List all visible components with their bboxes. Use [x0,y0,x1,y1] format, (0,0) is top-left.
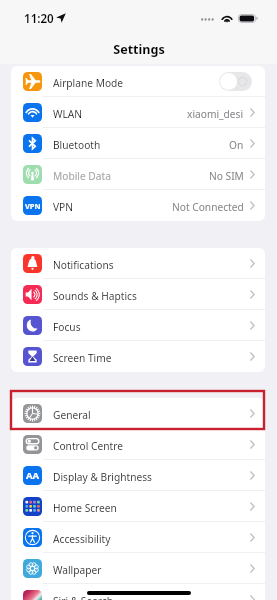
staticText: Sounds & Haptics [53,289,137,303]
staticText: Bluetooth [53,138,101,152]
button[interactable]: Notifications [11,248,265,278]
staticText: AA [26,469,40,482]
button[interactable]: VPN [11,190,265,220]
staticText: xiaomi_desi [187,107,244,121]
staticText: Focus [53,320,81,334]
button[interactable]: AA [11,460,265,490]
button[interactable]: Accessibility [11,522,265,552]
staticText: Screen Time [53,351,112,365]
staticText: Mobile Data [53,169,111,183]
button[interactable]: WLAN [11,97,265,127]
staticText: Siri & Search [53,594,114,600]
button[interactable]: Airplane Mode switch [219,72,252,91]
button[interactable]: Home Screen [11,491,265,521]
staticText: Control Centre [53,439,123,453]
staticText: WLAN [53,107,83,121]
button[interactable]: General [11,398,265,428]
staticText: No SIM [209,169,244,183]
button[interactable]: Bluetooth [11,128,265,158]
button[interactable]: Focus [11,310,265,340]
button[interactable]: Screen Time [11,341,265,371]
staticText: General [53,408,91,422]
button[interactable]: Siri & Search [11,584,265,600]
button[interactable]: Airplane Mode [11,66,265,96]
button[interactable]: Wallpaper [11,553,265,583]
button[interactable]: Control Centre [11,429,265,459]
staticText: Accessibility [53,532,111,546]
staticText: VPN [53,200,74,214]
staticText: Home Screen [53,501,117,515]
staticText: VPN [25,201,41,211]
button[interactable]: Sounds & Haptics [11,279,265,309]
staticText: Not Connected [172,200,244,214]
staticText: On [229,138,244,152]
staticText: Settings [113,41,165,58]
button[interactable]: Mobile Data [11,159,265,189]
staticText: 11:20 [24,11,54,27]
staticText: Wallpaper [53,563,102,577]
staticText: Display & Brightness [53,470,153,484]
staticText: Notifications [53,258,114,272]
staticText: Airplane Mode [53,76,124,90]
